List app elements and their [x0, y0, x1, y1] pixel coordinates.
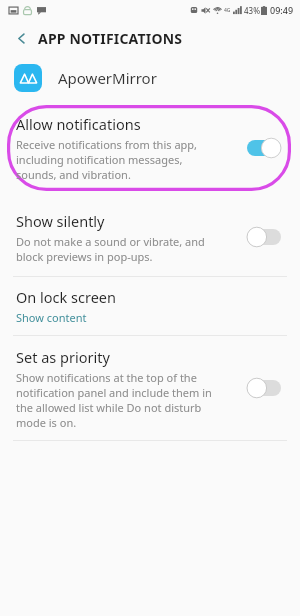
- button[interactable]: Toggle off: [247, 378, 281, 398]
- staticText: 43%: [244, 5, 260, 16]
- button[interactable]: Set as priority: [0, 336, 300, 440]
- staticText: Show content: [16, 310, 87, 325]
- staticText: 09:49: [270, 4, 294, 16]
- button[interactable]: Show silently: [0, 198, 300, 276]
- staticText: On lock screen: [16, 287, 116, 307]
- staticText: ApowerMirror: [58, 68, 157, 88]
- staticText: Do not make a sound or vibrate, and bloc…: [16, 234, 205, 264]
- button[interactable]: ApowerMirror: [0, 56, 300, 100]
- staticText: Set as priority: [16, 347, 110, 367]
- staticText: Allow notifications: [16, 114, 141, 134]
- button[interactable]: Toggle off: [247, 227, 281, 247]
- button[interactable]: On lock screen: [0, 277, 300, 335]
- staticText: 4G: [224, 7, 231, 14]
- button[interactable]: Back: [8, 25, 34, 51]
- staticText: Show silently: [16, 211, 105, 231]
- staticText: APP NOTIFICATIONS: [38, 29, 183, 48]
- staticText: Show notifications at the top of the not…: [16, 370, 212, 430]
- button[interactable]: Allow notifications: [7, 105, 291, 191]
- button[interactable]: Toggle on: [247, 138, 281, 158]
- staticText: Receive notifications from this app, inc…: [16, 137, 198, 182]
